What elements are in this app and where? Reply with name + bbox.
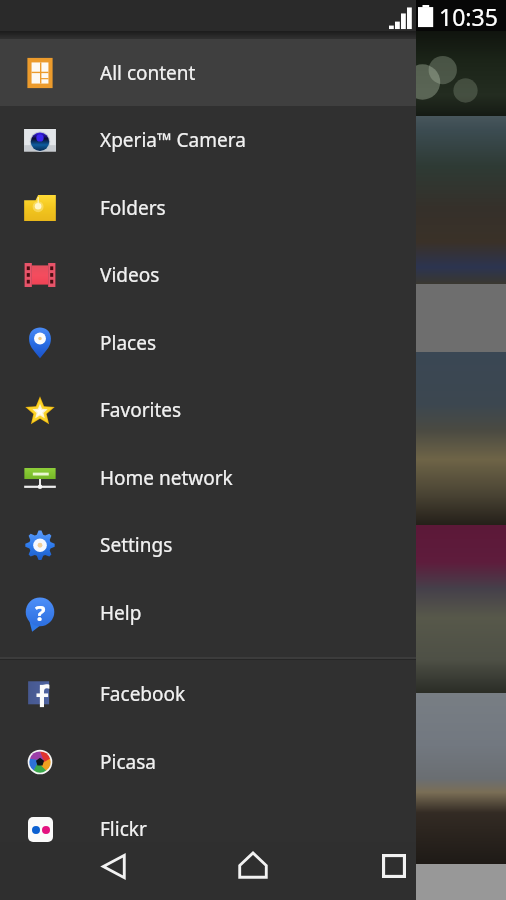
staticText: Settings — [100, 532, 173, 558]
button[interactable]: Recents — [366, 838, 422, 894]
button[interactable]: Videos — [0, 241, 416, 309]
button[interactable]: Home network — [0, 444, 416, 511]
staticText: 10:35 — [439, 1, 498, 32]
button[interactable]: Home — [225, 837, 281, 893]
staticText: Xperia™ Camera — [100, 127, 246, 153]
staticText: ? — [35, 597, 46, 627]
button[interactable]: Settings — [0, 511, 416, 579]
button[interactable]: Back — [85, 838, 141, 894]
staticText: Videos — [100, 262, 160, 288]
staticText: Picasa — [100, 749, 156, 775]
staticText: Home network — [100, 465, 233, 491]
other: Signal strength — [389, 6, 413, 30]
staticText: Flickr — [100, 816, 147, 842]
staticText: Help — [100, 600, 142, 626]
button[interactable]: Facebook — [0, 660, 416, 728]
staticText: Facebook — [100, 681, 186, 707]
staticText: Favorites — [100, 397, 182, 423]
staticText: All content — [100, 60, 196, 86]
button[interactable]: ? — [0, 579, 416, 647]
button[interactable]: All content — [0, 39, 416, 106]
button[interactable]: Xperia™ Camera — [0, 106, 416, 174]
staticText: Folders — [100, 195, 166, 221]
button[interactable]: Picasa — [0, 728, 416, 795]
other: Battery — [418, 5, 434, 28]
button[interactable]: Folders — [0, 174, 416, 241]
button[interactable]: Favorites — [0, 376, 416, 444]
button[interactable]: Places — [0, 309, 416, 376]
staticText: Places — [100, 330, 156, 356]
button[interactable]: Flickr — [0, 795, 416, 863]
